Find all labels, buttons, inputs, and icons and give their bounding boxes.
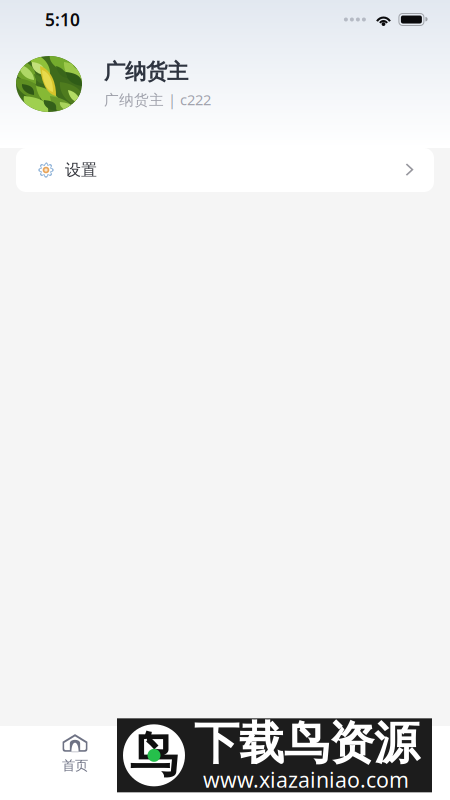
staticText: 广纳货主 | c222: [104, 90, 211, 109]
staticText: www.xiazainiao.com: [203, 765, 409, 794]
button[interactable]: 设置: [16, 148, 434, 192]
staticText: 设置: [65, 160, 97, 180]
staticText: 下载鸟资源: [194, 715, 419, 771]
staticText: 广纳货主: [104, 59, 188, 85]
staticText: 5:10: [45, 8, 80, 31]
button[interactable]: 首页: [44, 731, 106, 776]
staticText: 首页: [62, 757, 88, 774]
staticText: 鸟: [130, 726, 178, 785]
